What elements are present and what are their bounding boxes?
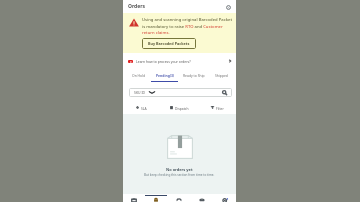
staticText: SLA [141,106,147,110]
staticText: Buy Barcoded Packets [148,41,190,46]
staticText: SKU ID [134,90,146,95]
button[interactable]: Help [224,3,232,11]
button[interactable]: Learn how to process your orders? [123,53,236,68]
staticText: Pending(3) [156,73,174,78]
staticText: Learn how to process your orders? [136,59,191,64]
button[interactable]: Shipped [210,68,233,82]
staticText: Shipped [215,73,228,78]
button[interactable]: Returns [167,194,190,202]
button[interactable]: Dispatch [160,101,198,114]
staticText: Orders [128,3,146,10]
button[interactable]: Ready to Ship [178,68,210,82]
button[interactable]: Filter [198,101,236,114]
staticText: Ready to Ship [183,73,205,78]
staticText: But keep checking this section from time… [144,173,215,177]
button[interactable]: Dashboard [123,194,145,202]
button[interactable]: On Hold [127,68,151,82]
button[interactable]: Orders [145,194,167,202]
button[interactable]: Growth [213,194,236,202]
staticText: Filter [216,106,224,110]
staticText: No orders yet [166,167,193,172]
button[interactable]: SKU ID [129,88,232,97]
button[interactable]: Payments [190,194,213,202]
staticText: Using and scanning original Barcoded Pac… [142,17,233,35]
button[interactable]: SLA [123,101,160,114]
button[interactable]: Buy Barcoded Packets [142,38,196,49]
staticText: Dispatch [175,106,189,110]
button[interactable]: Pending(3) [151,68,178,82]
staticText: On Hold [132,73,146,78]
